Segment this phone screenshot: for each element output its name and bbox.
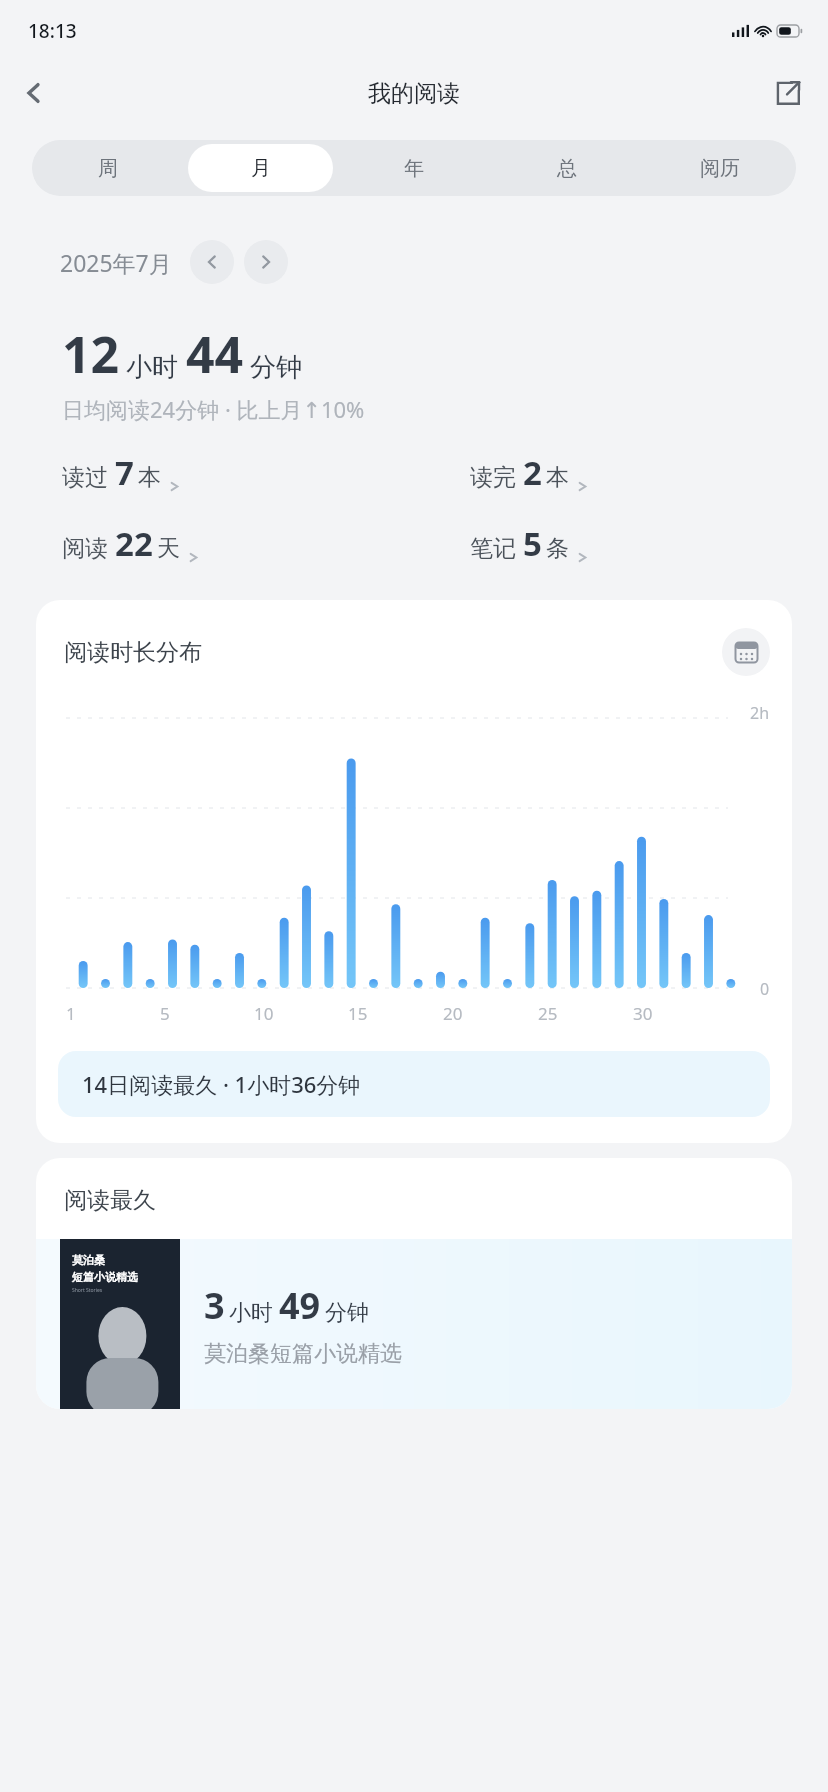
staticText: 笔记	[470, 534, 516, 563]
staticText: 读完	[470, 463, 516, 492]
staticText: 5	[160, 1002, 170, 1025]
staticText: 条	[546, 534, 569, 563]
button[interactable]: 读完	[470, 450, 828, 495]
button[interactable]: 14日阅读最久 · 1小时36分钟	[58, 1051, 770, 1117]
staticText: 日均阅读24分钟 · 比上月↑10%	[62, 394, 365, 424]
staticText: 天	[157, 534, 180, 563]
staticText: 49	[279, 1281, 321, 1330]
staticText: 分钟	[325, 1299, 369, 1327]
staticText: 1	[66, 1002, 76, 1025]
staticText: 小时	[229, 1299, 273, 1327]
staticText: 15	[348, 1002, 368, 1025]
button[interactable]: 年	[341, 144, 486, 192]
button[interactable]: Calendar	[722, 628, 770, 676]
staticText: 阅读	[62, 534, 108, 563]
staticText: 22	[115, 521, 153, 566]
button[interactable]: 月	[188, 144, 333, 192]
staticText: 2	[523, 450, 542, 495]
button[interactable]: 阅读	[62, 521, 414, 566]
staticText: 莫泊桑	[72, 1253, 105, 1267]
staticText: 14日阅读最久 · 1小时36分钟	[82, 1069, 361, 1099]
button[interactable]: 周	[36, 144, 180, 192]
staticText: 小时	[126, 351, 178, 384]
staticText: 25	[538, 1002, 558, 1025]
staticText: 本	[138, 463, 161, 492]
staticText: 44	[186, 320, 244, 388]
staticText: 年	[404, 156, 424, 181]
staticText: 18:13	[28, 18, 77, 44]
button[interactable]: Back	[8, 67, 60, 119]
staticText: Short Stories	[72, 1287, 103, 1294]
button[interactable]: Previous month	[190, 240, 234, 284]
staticText: 短篇小说精选	[72, 1270, 138, 1284]
button[interactable]: Share	[762, 67, 814, 119]
button[interactable]: 笔记	[470, 521, 828, 566]
staticText: 我的阅读	[368, 79, 460, 108]
staticText: 0	[760, 978, 770, 1000]
staticText: 莫泊桑短篇小说精选	[204, 1340, 402, 1368]
staticText: 总	[557, 156, 577, 181]
button[interactable]: 总	[494, 144, 639, 192]
staticText: 月	[251, 156, 271, 181]
button[interactable]: 莫泊桑	[36, 1239, 792, 1409]
staticText: 30	[633, 1002, 653, 1025]
staticText: 读过	[62, 463, 108, 492]
staticText: 2h	[750, 702, 770, 724]
staticText: 7	[115, 450, 134, 495]
staticText: 5	[523, 521, 542, 566]
staticText: 周	[98, 156, 118, 181]
button[interactable]: 读过	[62, 450, 414, 495]
staticText: 分钟	[250, 351, 302, 384]
staticText: 阅读最久	[64, 1186, 156, 1215]
staticText: 20	[443, 1002, 463, 1025]
staticText: 阅历	[700, 156, 740, 181]
staticText: 10	[254, 1002, 274, 1025]
staticText: 3	[204, 1281, 225, 1330]
staticText: 阅读时长分布	[64, 638, 202, 667]
staticText: 2025年7月	[60, 247, 172, 278]
button[interactable]: Next month	[244, 240, 288, 284]
staticText: 12	[62, 320, 120, 388]
staticText: 本	[546, 463, 569, 492]
button[interactable]: 阅历	[647, 144, 792, 192]
